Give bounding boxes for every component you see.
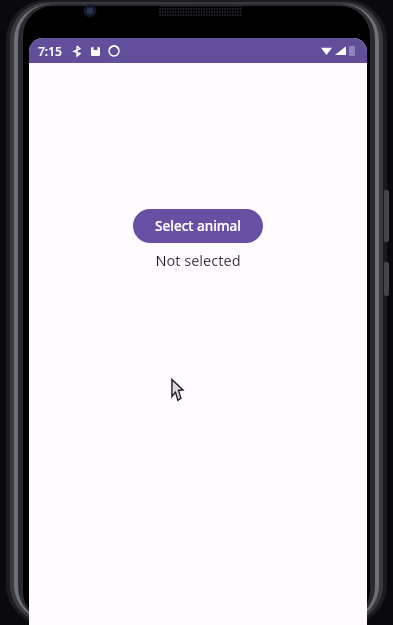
staticText: Not selected <box>155 250 241 270</box>
staticText: 7:15 <box>38 43 62 59</box>
staticText: Select animal <box>155 217 241 235</box>
button[interactable]: Select animal <box>133 209 263 243</box>
